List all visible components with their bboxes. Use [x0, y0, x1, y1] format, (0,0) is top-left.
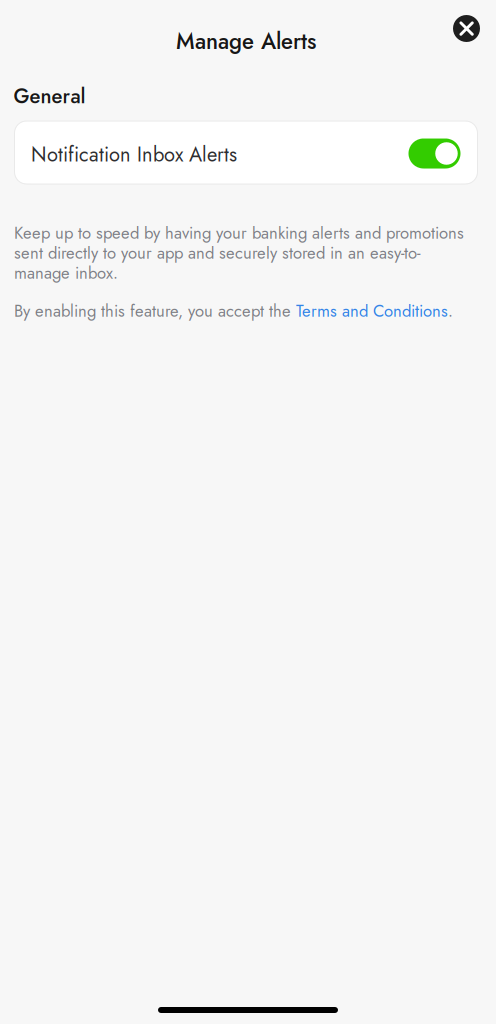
- staticText: Terms and Conditions: [296, 299, 448, 323]
- button[interactable]: Close: [453, 15, 480, 42]
- staticText: manage inbox.: [14, 261, 118, 285]
- button[interactable]: Notification Inbox Alerts: [14, 121, 477, 184]
- staticText: General: [13, 82, 85, 111]
- button[interactable]: Terms and Conditions: [296, 299, 448, 323]
- staticText: .: [448, 299, 453, 323]
- staticText: sent directly to your app and securely s…: [14, 241, 420, 265]
- staticText: Manage Alerts: [176, 25, 316, 57]
- staticText: Keep up to speed by having your banking …: [14, 221, 464, 245]
- staticText: Notification Inbox Alerts: [31, 140, 237, 169]
- staticText: By enabling this feature, you accept the: [14, 299, 296, 323]
